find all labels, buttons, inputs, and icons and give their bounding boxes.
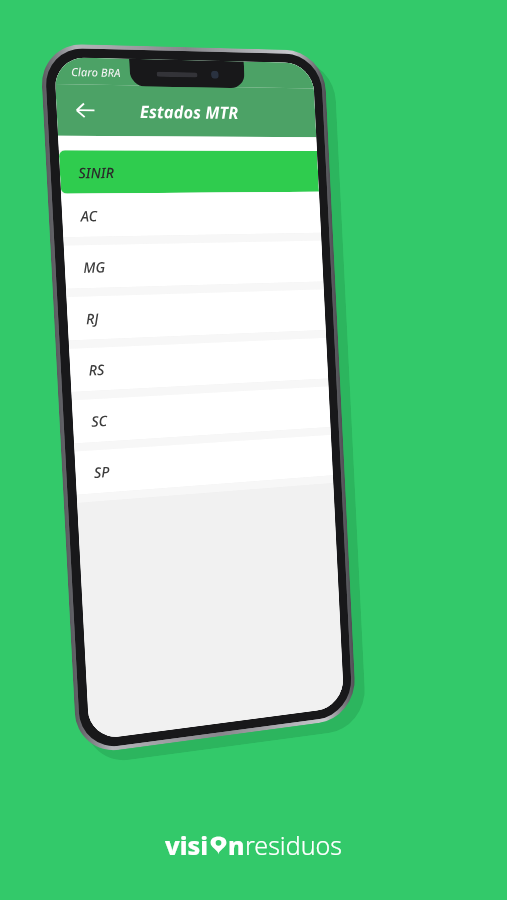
staticText: SC: [91, 411, 108, 431]
staticText: MG: [83, 257, 106, 277]
staticText: SP: [93, 462, 111, 482]
staticText: visi: [165, 828, 209, 862]
staticText: SINIR: [78, 163, 115, 182]
staticText: Claro BRA: [71, 64, 121, 80]
staticText: AC: [80, 206, 98, 226]
staticText: Estados MTR: [139, 100, 239, 124]
button[interactable]: SP: [74, 435, 333, 495]
staticText: residuos: [245, 828, 342, 862]
staticText: RJ: [85, 308, 100, 328]
button[interactable]: RS: [69, 338, 328, 392]
button[interactable]: Back: [64, 89, 107, 131]
button[interactable]: visi: [165, 828, 342, 862]
button[interactable]: MG: [64, 240, 323, 289]
button[interactable]: AC: [61, 192, 321, 237]
button[interactable]: RJ: [66, 289, 326, 340]
button[interactable]: SC: [72, 386, 331, 443]
staticText: RS: [88, 359, 105, 380]
button[interactable]: SINIR: [59, 150, 319, 194]
staticText: n: [228, 828, 245, 862]
